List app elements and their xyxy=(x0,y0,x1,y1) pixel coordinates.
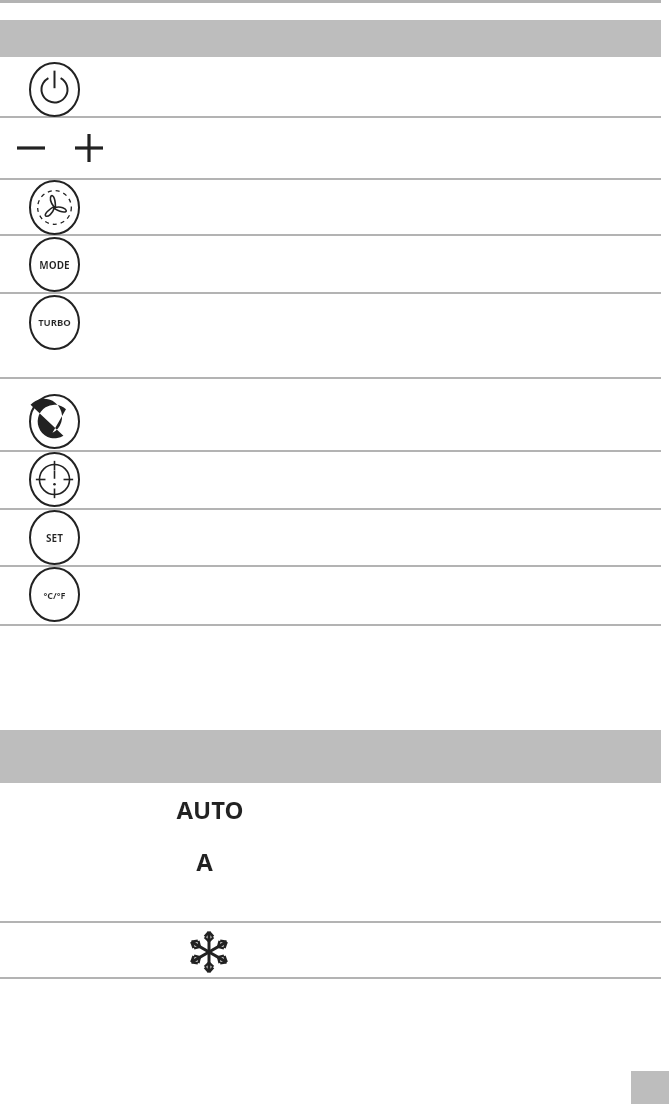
button[interactable]: AUTO xyxy=(176,793,244,826)
button[interactable]: Fan speed xyxy=(29,180,80,235)
staticText: SET xyxy=(46,531,63,545)
button[interactable]: °C/°F xyxy=(29,567,80,622)
button[interactable]: Power xyxy=(29,62,80,117)
button[interactable]: SET xyxy=(29,510,80,565)
button[interactable]: Cool mode xyxy=(187,930,231,974)
staticText: °C/°F xyxy=(43,589,66,601)
button[interactable]: Increase xyxy=(66,130,112,166)
button[interactable]: Decrease xyxy=(8,130,54,166)
button[interactable]: MODE xyxy=(29,237,80,292)
button[interactable]: TURBO xyxy=(29,295,80,350)
button[interactable]: Timer xyxy=(29,452,80,507)
staticText: MODE xyxy=(39,258,70,272)
button[interactable]: A xyxy=(196,845,213,878)
staticText: A xyxy=(196,845,213,878)
button[interactable]: Sleep xyxy=(29,394,80,449)
staticText: TURBO xyxy=(38,316,71,329)
staticText: AUTO xyxy=(176,793,244,826)
